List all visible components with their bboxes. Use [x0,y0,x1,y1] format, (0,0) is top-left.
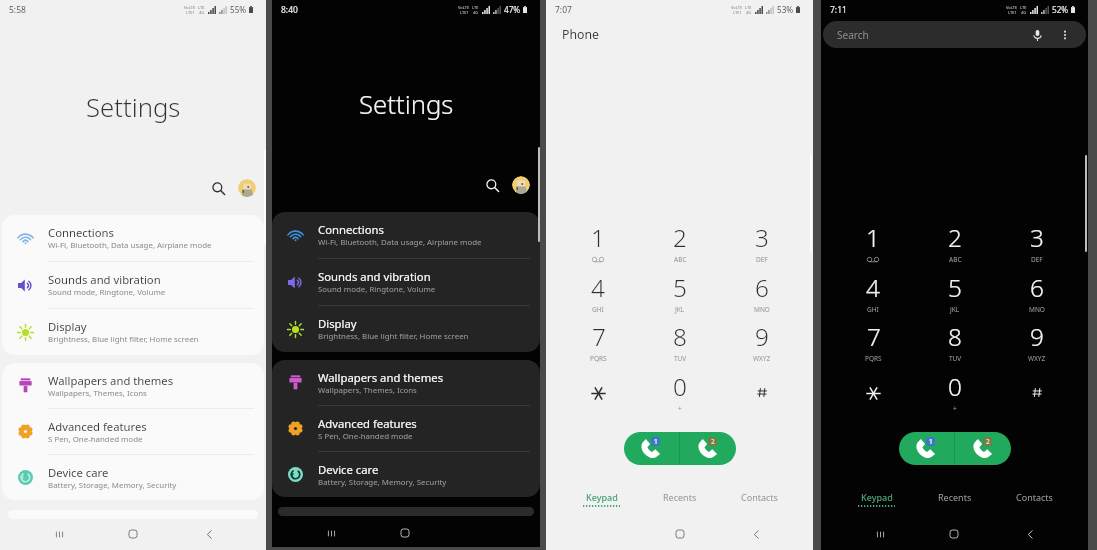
staticText: Contacts [1016,491,1053,503]
button[interactable]: 8 [653,320,707,366]
staticText: Advanced features [318,416,417,431]
button[interactable]: Recent apps [317,519,345,547]
staticText: LTE1 [460,10,469,15]
button[interactable]: Wallpapers and themes [272,360,540,405]
button[interactable]: 6 [1010,271,1064,317]
staticText: LTE [472,5,479,10]
staticText: 7 [592,320,606,353]
button[interactable]: 6 [735,271,789,317]
button[interactable]: More options [1053,23,1077,47]
button[interactable]: Advanced features [2,409,264,454]
button[interactable]: Search [481,174,503,196]
staticText: Contacts [741,491,778,503]
button[interactable]: 1 [571,221,625,267]
button[interactable]: 1 [846,221,900,267]
button[interactable]: Advanced features [272,406,540,451]
button[interactable]: Back [195,520,223,548]
staticText: 4 [866,271,880,304]
button[interactable]: 8 [928,320,982,366]
button[interactable]: Device care [272,452,540,497]
button[interactable]: 9 [735,320,789,366]
button[interactable]: Recent apps [866,520,894,548]
button[interactable]: Recent apps [45,520,73,548]
staticText: TUV [949,354,962,363]
button[interactable]: 0 [928,370,982,416]
button[interactable]: Connections [2,215,264,261]
button[interactable]: Display [2,309,264,355]
button[interactable]: 4 [571,271,625,317]
staticText: 3 [1030,221,1044,254]
staticText: 2 [948,221,962,254]
button[interactable]: Sounds and vibration [272,259,540,305]
button[interactable]: 5 [653,271,707,317]
button[interactable]: Sounds and vibration [2,262,264,308]
button[interactable]: 3 [735,221,789,267]
button[interactable]: Call with SIM 1 [899,432,954,465]
staticText: 7:07 [555,4,572,16]
staticText: S Pen, One-handed mode [48,434,143,445]
staticText: LTE1 [733,10,742,15]
button[interactable]: Call with SIM 2 [680,432,736,465]
button[interactable]: Contacts [994,491,1074,513]
button[interactable] [846,370,900,416]
staticText: Wi-Fi, Bluetooth, Data usage, Airplane m… [48,240,212,251]
staticText: 4 [591,271,605,304]
staticText: 52% [1052,4,1069,15]
staticText: GHI [867,305,879,314]
button[interactable]: Profile [238,179,256,197]
button[interactable]: Home [940,520,968,548]
staticText: DEF [1031,255,1043,264]
button[interactable]: 0 [653,370,707,416]
button[interactable]: Home [391,519,419,547]
staticText: VoLTE [458,5,470,10]
button[interactable]: 4 [846,271,900,317]
button[interactable]: Profile [512,176,530,194]
button[interactable]: Recents [640,491,720,513]
button[interactable]: 9 [1010,320,1064,366]
button[interactable]: Call with SIM 2 [955,432,1011,465]
staticText: Sounds and vibration [318,269,431,284]
button[interactable]: 3 [1010,221,1064,267]
staticText: Sound mode, Ringtone, Volume [48,287,166,298]
button[interactable]: Device care [2,455,264,500]
button[interactable] [571,370,625,416]
staticText: Recents [938,491,972,503]
button[interactable]: 7 [571,320,625,366]
staticText: 7 [867,320,881,353]
button[interactable]: Home [666,520,694,548]
button[interactable]: Back [742,520,770,548]
button[interactable]: Contacts [719,491,799,513]
button[interactable]: Voice search [1025,23,1049,47]
staticText: Settings [359,87,454,122]
staticText: 5 [673,271,687,304]
staticText: Sound mode, Ringtone, Volume [318,284,436,295]
button[interactable]: 2 [653,221,707,267]
button[interactable]: Display [272,306,540,352]
staticText: 6 [1030,271,1044,304]
staticText: Display [48,319,87,334]
staticText: Wallpapers and themes [318,370,444,385]
button[interactable]: Call with SIM 1 [624,432,679,465]
staticText: WXYZ [753,354,771,363]
button[interactable]: Back [1016,520,1044,548]
button[interactable]: Connections [272,212,540,258]
button[interactable]: Search [823,21,1086,48]
staticText: Connections [318,222,384,237]
staticText: LTE [1020,5,1027,10]
button[interactable]: Keypad [561,491,641,513]
staticText: ABC [674,255,687,264]
staticText: 1 [654,437,658,446]
button[interactable]: 7 [846,320,900,366]
button[interactable]: Home [119,520,147,548]
staticText: Keypad [861,491,893,503]
button[interactable]: Search [207,177,229,199]
button[interactable]: Keypad [836,491,916,513]
button[interactable]: 2 [928,221,982,267]
button[interactable]: 5 [928,271,982,317]
button[interactable]: Wallpapers and themes [2,363,264,408]
button[interactable] [735,370,789,416]
staticText: 5 [948,271,962,304]
button[interactable]: Recents [915,491,995,513]
button[interactable] [1010,370,1064,416]
staticText: Brightness, Blue light filter, Home scre… [48,334,199,345]
